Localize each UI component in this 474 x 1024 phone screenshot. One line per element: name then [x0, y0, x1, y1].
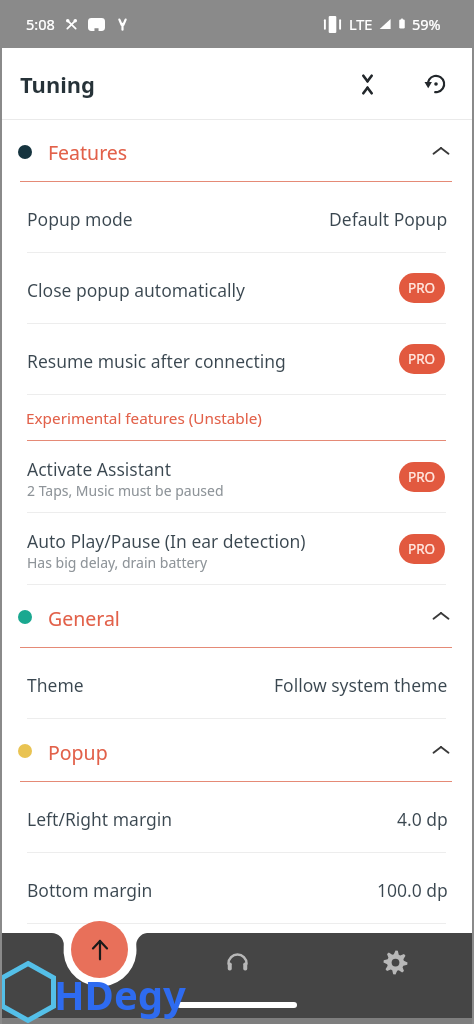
staticText: Theme	[27, 673, 84, 697]
staticText: 5:08	[26, 14, 55, 34]
staticText: Left/Right margin	[27, 807, 173, 831]
staticText: Has big delay, drain battery	[27, 553, 208, 572]
button[interactable]: Collapse all	[344, 61, 390, 107]
staticText: Tuning	[20, 69, 95, 99]
staticText: Experimental features (Unstable)	[26, 408, 262, 429]
staticText: Features	[48, 139, 128, 166]
staticText: Close popup automatically	[27, 278, 245, 302]
staticText: 59%	[412, 14, 441, 34]
staticText: Popup	[48, 739, 108, 766]
button[interactable]: Popup	[0, 719, 474, 782]
button[interactable]: Close popup automatically	[0, 253, 474, 324]
staticText: General	[48, 605, 120, 632]
button[interactable]: Popup mode	[0, 182, 474, 253]
staticText: Resume music after connecting	[27, 349, 286, 373]
staticText: PRO	[408, 350, 436, 368]
staticText: Follow system theme	[274, 673, 448, 697]
button[interactable]: Theme	[0, 648, 474, 719]
button[interactable]: Activate Assistant	[0, 441, 474, 513]
staticText: HDegy	[54, 967, 186, 1021]
button[interactable]: Auto Play/Pause (In ear detection)	[0, 513, 474, 585]
staticText: Auto Play/Pause (In ear detection)	[27, 529, 306, 553]
button[interactable]: Features	[0, 120, 474, 182]
button[interactable]: Bottom margin	[0, 853, 474, 924]
staticText: PRO	[408, 540, 436, 558]
button[interactable]: General	[0, 585, 474, 648]
button[interactable]: Settings	[316, 933, 474, 991]
staticText: PRO	[408, 468, 436, 486]
staticText: Popup mode	[27, 207, 133, 231]
staticText: Default Popup	[329, 207, 448, 231]
staticText: PRO	[408, 279, 436, 297]
staticText: LTE	[349, 14, 373, 34]
staticText: 2 Taps, Music must be paused	[27, 481, 224, 500]
staticText: 100.0 dp	[377, 878, 448, 902]
button[interactable]: Scroll to top	[71, 921, 128, 978]
button[interactable]: Reset to defaults	[413, 61, 459, 107]
button[interactable]: Resume music after connecting	[0, 324, 474, 395]
button[interactable]: Tuning	[0, 933, 158, 991]
staticText: Activate Assistant	[27, 457, 171, 481]
staticText: 4.0 dp	[397, 807, 448, 831]
staticText: Bottom margin	[27, 878, 153, 902]
button[interactable]: Earbuds	[158, 933, 316, 991]
button[interactable]: Left/Right margin	[0, 782, 474, 853]
